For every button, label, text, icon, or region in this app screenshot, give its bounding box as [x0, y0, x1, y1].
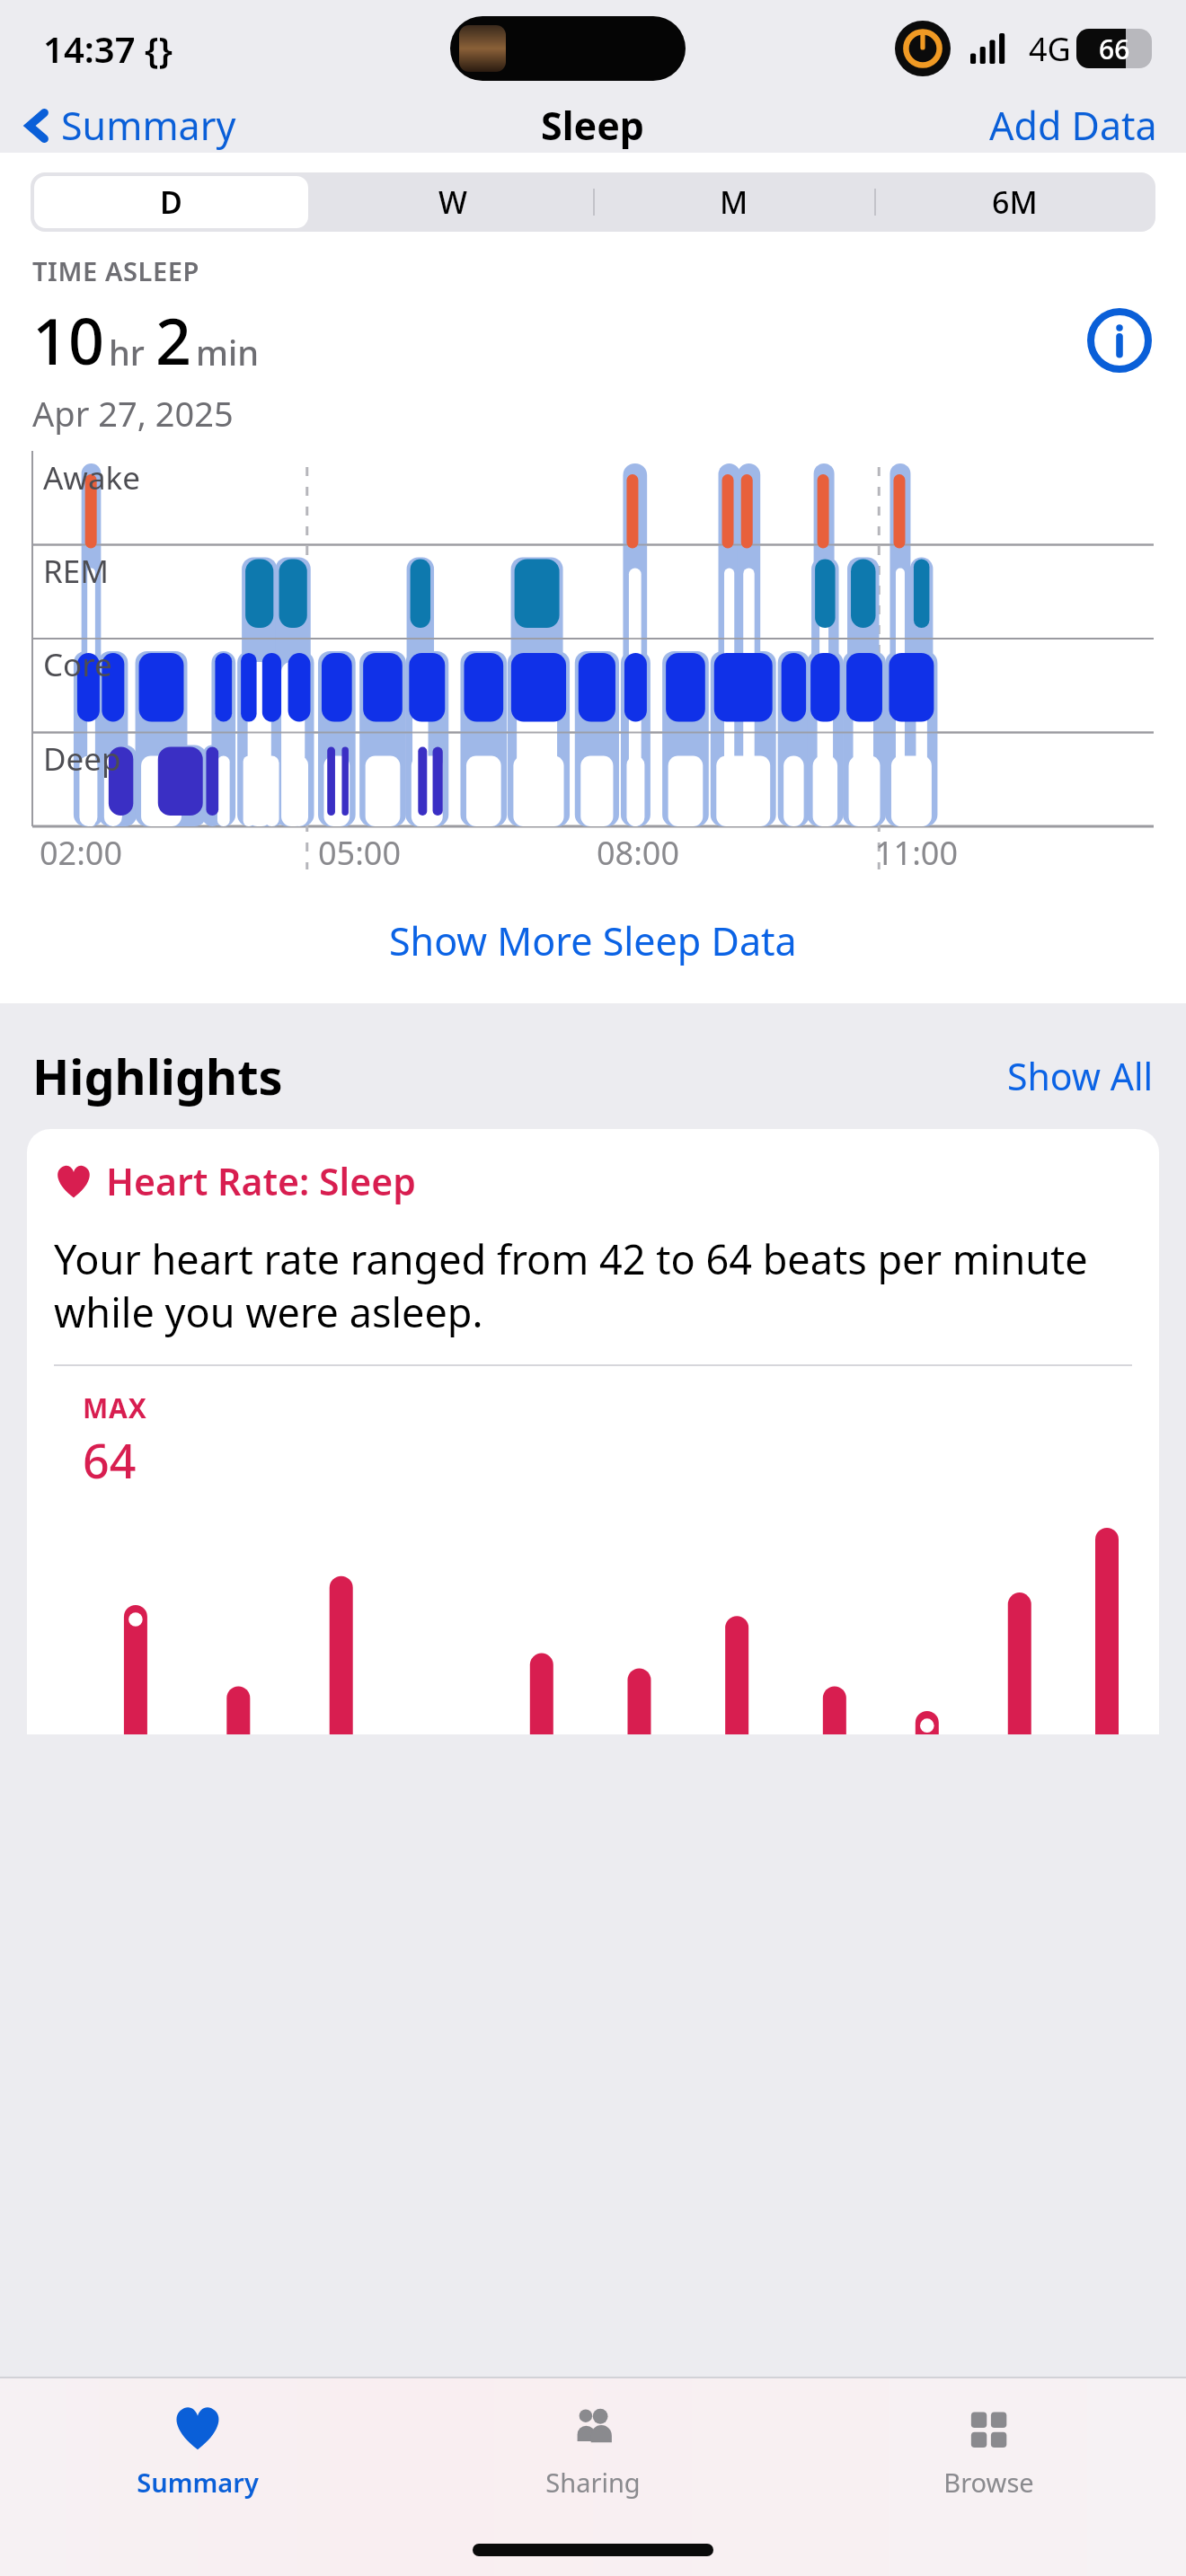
staticText: MAX	[83, 1389, 147, 1426]
staticText: 11:00	[875, 831, 959, 875]
staticText: W	[438, 181, 467, 223]
staticText: M	[720, 181, 748, 223]
staticText: Browse	[943, 2465, 1034, 2500]
button[interactable]: Summary	[0, 2396, 395, 2500]
button[interactable]: Heart Rate: Sleep	[27, 1129, 1159, 1734]
staticText: 4G	[1029, 27, 1071, 71]
button[interactable]: Sharing	[395, 2396, 791, 2500]
staticText: 08:00	[597, 831, 680, 875]
staticText: Highlights	[32, 1043, 283, 1109]
staticText: Summary	[61, 99, 236, 152]
staticText: 10	[32, 297, 105, 383]
staticText: 05:00	[318, 831, 402, 875]
staticText: 64	[83, 1428, 137, 1492]
staticText: Awake	[43, 456, 140, 499]
staticText: TIME ASLEEP	[32, 253, 199, 288]
staticText: Sharing	[545, 2465, 641, 2500]
staticText: REM	[43, 550, 109, 593]
staticText: Sleep	[541, 99, 645, 152]
button[interactable]: M	[593, 172, 874, 232]
button[interactable]: D	[31, 172, 312, 232]
staticText: 2	[155, 297, 192, 383]
staticText: 14:37 {}	[43, 24, 173, 73]
staticText: hr	[109, 329, 145, 375]
staticText: D	[160, 181, 182, 223]
button[interactable]: 6M	[874, 172, 1155, 232]
button[interactable]: Information about time asleep	[1085, 306, 1154, 375]
button[interactable]: Show More Sleep Data	[0, 914, 1186, 967]
staticText: Apr 27, 2025	[32, 390, 234, 437]
button[interactable]: W	[312, 172, 593, 232]
staticText: Your heart rate ranged from 42 to 64 bea…	[54, 1231, 1132, 1339]
staticText: 6M	[992, 181, 1038, 223]
button[interactable]: Show All	[1007, 1051, 1154, 1101]
staticText: min	[196, 329, 260, 375]
staticText: Deep	[43, 737, 121, 781]
staticText: Core	[43, 643, 112, 686]
button[interactable]: Summary	[23, 99, 236, 152]
button[interactable]: Browse	[791, 2396, 1186, 2500]
staticText: 02:00	[40, 831, 123, 875]
staticText: Show More Sleep Data	[389, 914, 797, 967]
staticText: Heart Rate: Sleep	[106, 1156, 416, 1206]
staticText: 66	[1099, 31, 1130, 67]
staticText: Summary	[137, 2465, 259, 2500]
button[interactable]: Add Data	[989, 99, 1157, 152]
